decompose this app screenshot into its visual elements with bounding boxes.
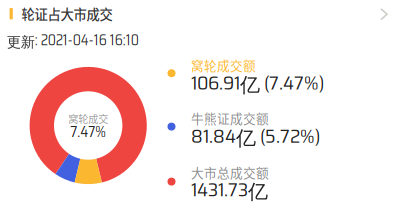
button[interactable]: 大市总成交额 xyxy=(0,0,398,205)
staticText: 大市总成交额 xyxy=(191,163,269,181)
button[interactable]: 牛熊证成交额 xyxy=(0,0,398,205)
staticText: 窝轮成交 xyxy=(68,111,108,126)
button[interactable]: 窝轮成交额 xyxy=(0,0,398,205)
staticText: 7.47% xyxy=(70,120,106,143)
staticText: 轮证占大市成交 xyxy=(22,4,113,23)
staticText: 更新: 2021-04-16 16:10 xyxy=(7,29,139,52)
staticText: 81.84亿 (5.72%) xyxy=(191,120,320,152)
staticText: 窝轮成交额 xyxy=(191,56,256,74)
staticText: 106.91亿 (7.47%) xyxy=(191,67,324,98)
staticText: 1431.73亿 xyxy=(191,174,268,205)
button[interactable]: 轮证占大市成交 xyxy=(0,0,398,28)
staticText: 牛熊证成交额 xyxy=(191,109,269,127)
